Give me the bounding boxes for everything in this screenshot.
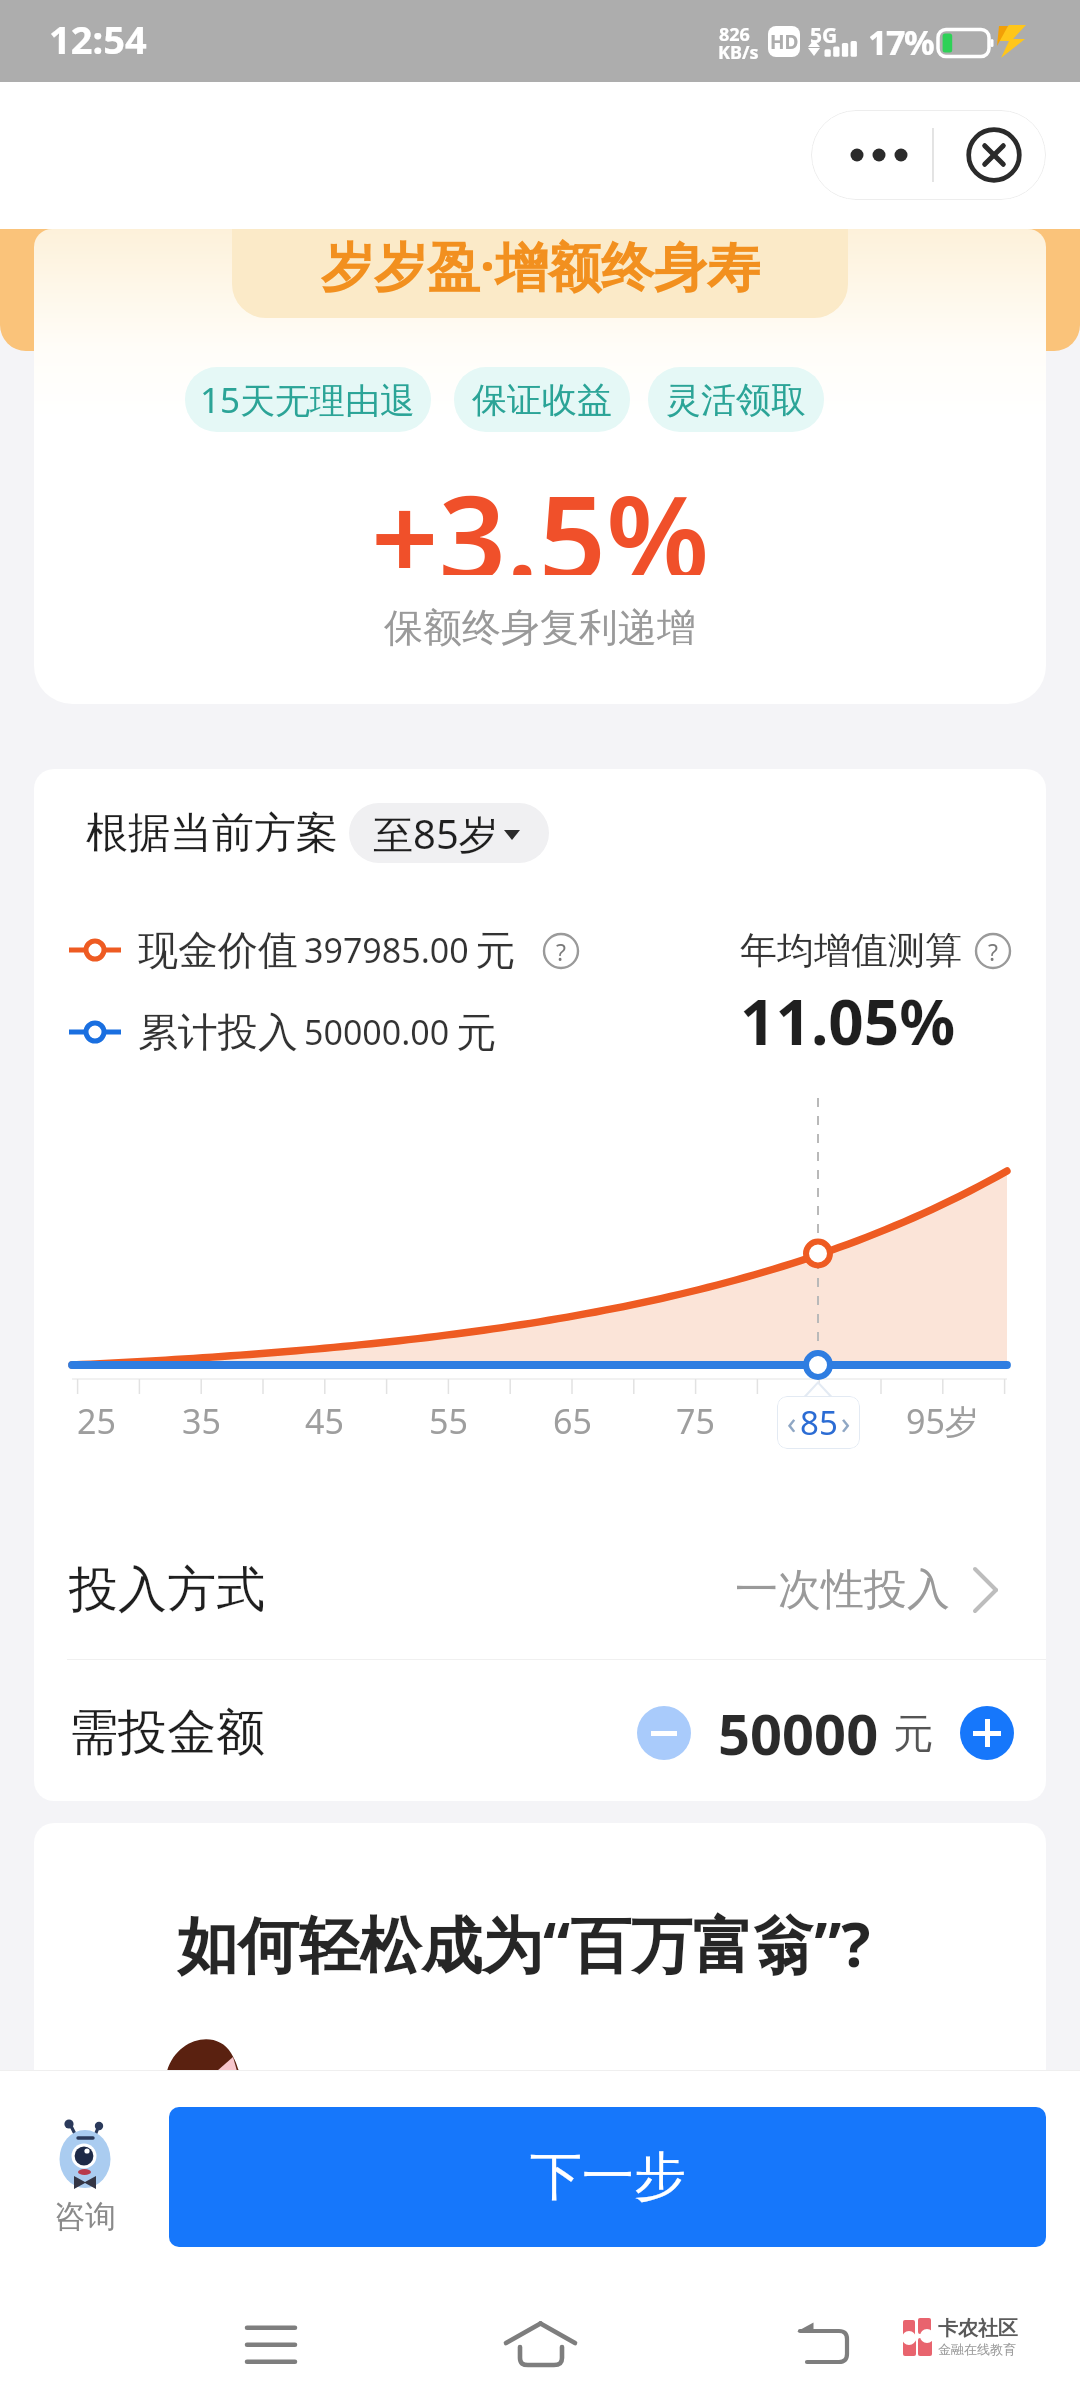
button[interactable]: Help [542,932,580,970]
staticText: 岁岁盈·增额终身寿 [321,229,760,295]
button[interactable]: 至85岁 [349,803,549,863]
staticText: 元 [456,1007,496,1057]
button[interactable]: 保证收益 [454,367,630,432]
staticText: 15天无理由退 [200,376,416,424]
button[interactable]: 下一步 [169,2107,1046,2247]
button[interactable]: 灵活领取 [648,367,824,432]
button[interactable]: Recent apps [246,2318,296,2362]
button[interactable]: 15天无理由退 [185,367,431,432]
staticText: +3.5% [371,455,710,575]
staticText: 55 [429,1398,468,1444]
staticText: 85 [800,1400,838,1445]
button[interactable]: ‹ [777,1396,860,1449]
staticText: 至85岁 [373,806,499,861]
staticText: 826 [719,22,750,42]
staticText: ? [556,936,566,967]
staticText: 5G [810,21,838,45]
staticText: 45 [305,1398,344,1444]
staticText: 保额终身复利递增 [384,603,696,652]
button[interactable]: 如何轻松成为“百万富翁”? [34,1823,1046,2123]
staticText: 75 [676,1398,715,1444]
button[interactable]: Help [974,932,1012,970]
staticText: KB/s [718,40,759,60]
staticText: 397985.00 [304,927,469,973]
staticText: 如何轻松成为“百万富翁”? [177,1902,871,1982]
staticText: 元 [475,925,515,975]
staticText: 35 [182,1398,221,1444]
staticText: ? [988,936,998,967]
staticText: 17% [868,19,934,59]
button[interactable]: Home [505,2318,579,2366]
button[interactable]: 咨询 [34,2118,136,2248]
button[interactable]: Close [942,110,1046,200]
button[interactable]: Increase amount [960,1706,1014,1760]
staticText: 投入方式 [69,1559,265,1621]
staticText: 一次性投入 [735,1563,950,1617]
staticText: 50000.00 [304,1009,450,1055]
staticText: 灵活领取 [666,378,806,422]
staticText: 金融在线教育 [938,2341,1016,2357]
staticText: 12:54 [49,13,147,61]
staticText: HD [770,29,799,55]
staticText: ‹ [787,1402,797,1443]
staticText: 65 [553,1398,592,1444]
staticText: 95岁 [906,1398,979,1444]
button[interactable]: Back [794,2318,850,2366]
button[interactable]: More options [811,110,933,200]
staticText: 根据当前方案 [86,807,338,860]
staticText: 保证收益 [472,378,612,422]
staticText: 25 [77,1398,116,1444]
staticText: 下一步 [530,2144,686,2210]
staticText: 元 [893,1708,933,1758]
staticText: 卡农社区 [938,2316,1018,2340]
staticText: 50000 [718,1695,879,1771]
staticText: 现金价值 [138,925,298,975]
staticText: 咨询 [54,2197,116,2236]
button[interactable]: Decrease amount [637,1706,691,1760]
staticText: 年均增值测算 [740,927,962,974]
staticText: 需投金额 [69,1702,265,1764]
staticText: 累计投入 [138,1007,298,1057]
staticText: 11.05% [740,979,956,1059]
button[interactable]: 投入方式 [34,1530,1046,1650]
staticText: › [841,1402,851,1443]
